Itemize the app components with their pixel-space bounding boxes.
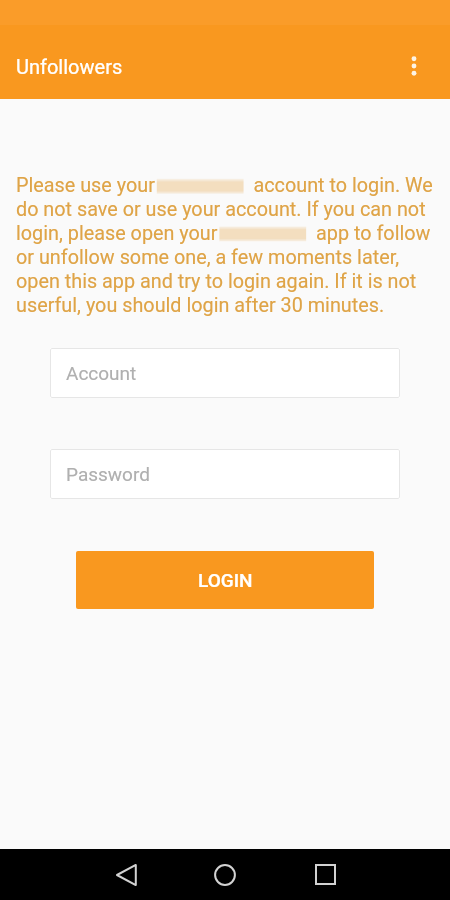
button[interactable]: Home	[197, 849, 253, 900]
staticText: LOGIN	[198, 569, 253, 591]
staticText: Unfollowers	[16, 55, 123, 78]
button[interactable]: Password	[50, 449, 400, 499]
staticText: Password	[66, 463, 150, 485]
button[interactable]: Back	[99, 849, 155, 900]
button[interactable]: Account	[50, 348, 400, 398]
staticText: Account	[66, 362, 137, 384]
button[interactable]: LOGIN	[76, 551, 374, 609]
button[interactable]: Recent apps	[297, 849, 353, 900]
button[interactable]: More options	[390, 42, 438, 90]
staticText: Please use your instagram account to log…	[16, 174, 438, 317]
